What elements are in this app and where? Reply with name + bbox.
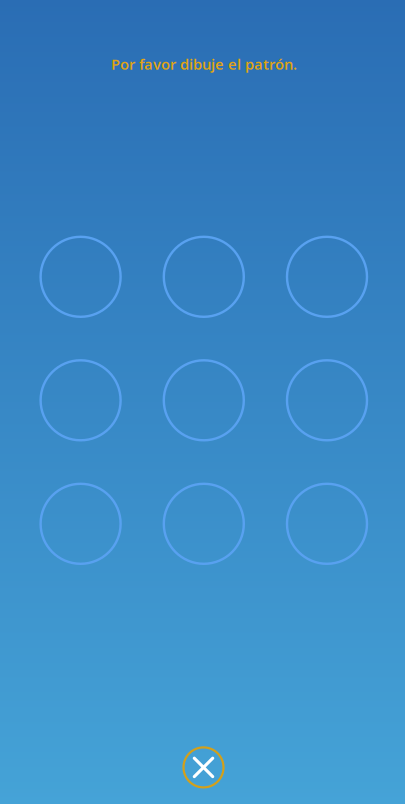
button[interactable]: Pattern dot 7 <box>41 484 121 564</box>
button[interactable]: Pattern dot 5 <box>164 360 244 440</box>
staticText: Por favor dibuje el patrón. <box>111 54 297 74</box>
button[interactable]: Pattern dot 9 <box>287 484 367 564</box>
button[interactable]: Pattern dot 4 <box>41 360 121 440</box>
button[interactable]: Pattern dot 8 <box>164 484 244 564</box>
button[interactable]: Cancel <box>173 737 233 797</box>
button[interactable]: Pattern dot 6 <box>287 360 367 440</box>
button[interactable]: Pattern dot 1 <box>41 237 121 317</box>
button[interactable]: Pattern dot 2 <box>164 237 244 317</box>
button[interactable]: Pattern dot 3 <box>287 237 367 317</box>
